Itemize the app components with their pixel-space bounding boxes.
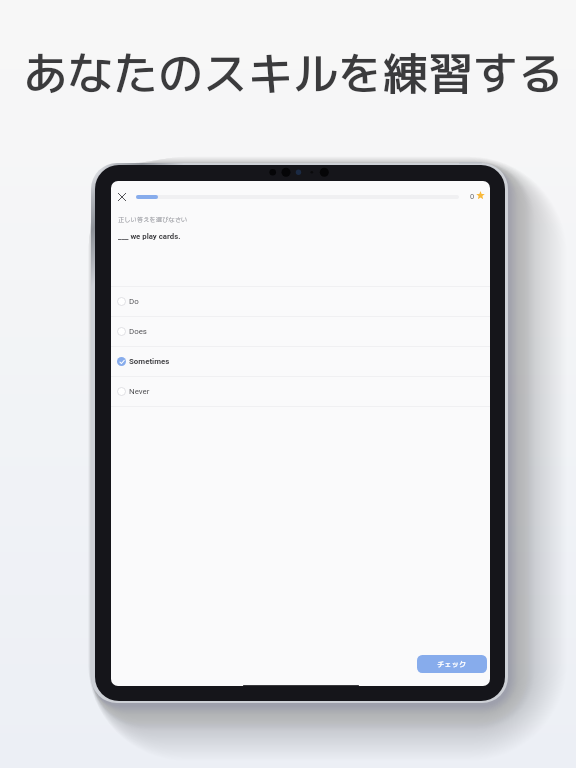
- button[interactable]: チェック: [417, 655, 487, 673]
- staticText: 正しい答えを選びなさい: [118, 215, 188, 224]
- staticText: Does: [129, 327, 147, 336]
- button[interactable]: Does: [111, 317, 490, 346]
- staticText: あなたのスキルを練習する: [23, 42, 564, 105]
- button[interactable]: Close: [111, 188, 132, 206]
- staticText: Sometimes: [129, 357, 170, 366]
- staticText: 0: [470, 192, 475, 201]
- staticText: ___ we play cards.: [118, 232, 181, 241]
- staticText: チェック: [437, 659, 467, 669]
- button[interactable]: Never: [111, 377, 490, 406]
- button[interactable]: Stars earned: [476, 191, 485, 200]
- staticText: Do: [129, 297, 139, 306]
- button[interactable]: Do: [111, 287, 490, 316]
- button[interactable]: Sometimes: [111, 347, 490, 376]
- staticText: Never: [129, 387, 150, 396]
